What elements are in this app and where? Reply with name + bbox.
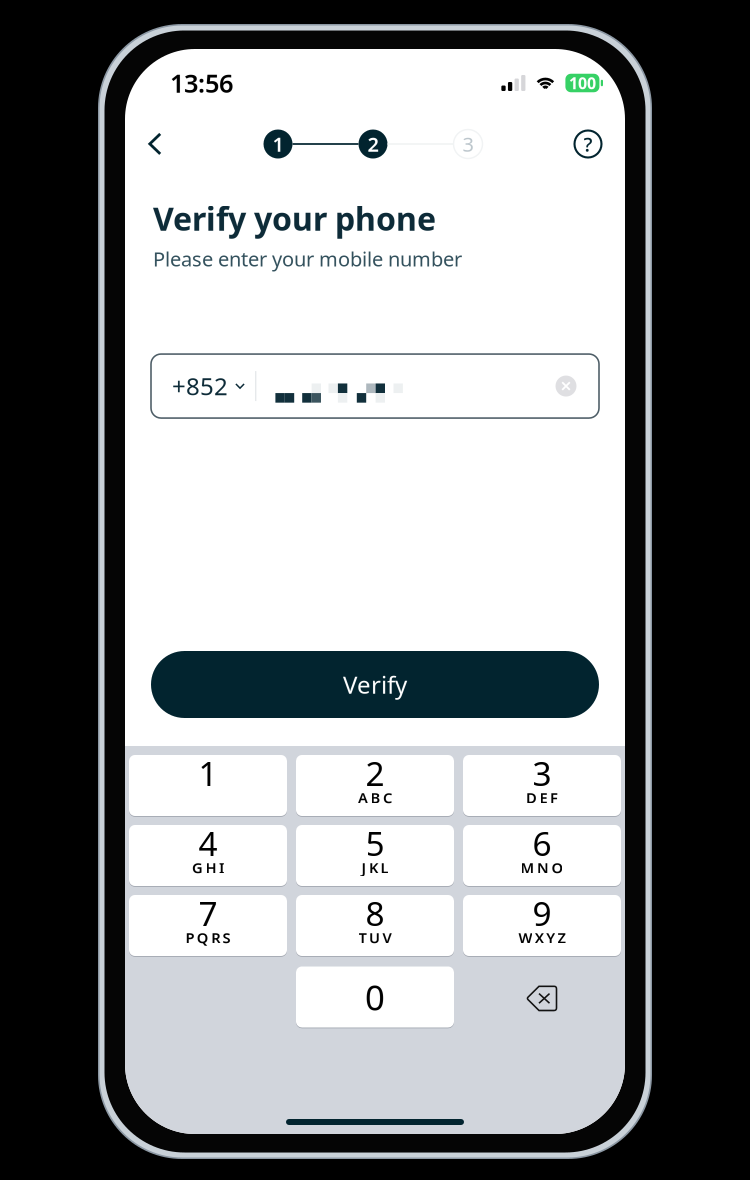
staticText: Y (546, 928, 555, 947)
button[interactable]: Delete (463, 965, 621, 1029)
staticText: E (539, 788, 547, 807)
staticText: P (185, 928, 194, 947)
staticText: V (382, 928, 391, 947)
staticText: 13:56 (170, 66, 233, 100)
staticText: 4 (198, 821, 217, 865)
staticText: G (192, 858, 203, 877)
button[interactable]: +852 (151, 355, 255, 417)
staticText: B (370, 788, 380, 807)
staticText: 0 (365, 974, 385, 1020)
staticText: 9 (532, 891, 551, 935)
button[interactable]: 1 (129, 755, 287, 816)
staticText: Verify your phone (153, 197, 436, 239)
staticText: L (380, 858, 388, 877)
button[interactable]: Clear text (546, 366, 586, 406)
staticText: Verify (343, 669, 407, 700)
button[interactable]: 8 (296, 895, 454, 956)
staticText: O (551, 858, 563, 877)
button[interactable]: 5 (296, 825, 454, 886)
staticText: K (369, 858, 378, 877)
staticText: Z (558, 928, 566, 947)
staticText: 2 (367, 131, 378, 157)
staticText: M (521, 858, 535, 877)
button[interactable]: Help (566, 122, 610, 166)
staticText: 100 (569, 72, 596, 94)
staticText: C (383, 788, 392, 807)
button[interactable]: 9 (463, 895, 621, 956)
staticText: 2 (365, 751, 384, 795)
button[interactable]: Back (133, 122, 177, 166)
button[interactable]: 7 (129, 895, 287, 956)
staticText: 8 (365, 891, 384, 935)
staticText: 3 (532, 751, 551, 795)
staticText: A (358, 788, 368, 807)
staticText: S (223, 928, 231, 947)
staticText: J (362, 858, 367, 877)
staticText: Please enter your mobile number (153, 245, 462, 272)
staticText: ? (583, 131, 592, 157)
staticText: Q (197, 928, 209, 947)
button[interactable]: Verify (151, 651, 599, 718)
staticText: 6 (532, 821, 551, 865)
staticText: R (211, 928, 220, 947)
staticText: F (550, 788, 558, 807)
button[interactable]: 0 (296, 966, 454, 1027)
staticText: 3 (462, 131, 473, 157)
staticText: X (535, 928, 544, 947)
button[interactable]: 4 (129, 825, 287, 886)
staticText: N (537, 858, 549, 877)
button[interactable]: 6 (463, 825, 621, 886)
staticText: D (526, 788, 537, 807)
staticText: 1 (272, 131, 283, 157)
staticText: 7 (198, 891, 217, 935)
staticText: 5 (365, 821, 384, 865)
button[interactable]: 2 (296, 755, 454, 816)
staticText: T (359, 928, 367, 947)
button[interactable]: 3 (463, 755, 621, 816)
staticText: I (219, 858, 224, 877)
staticText: 1 (198, 751, 217, 795)
staticText: H (205, 858, 216, 877)
staticText: W (518, 928, 532, 947)
staticText: U (369, 928, 380, 947)
staticText: +852 (172, 370, 228, 402)
